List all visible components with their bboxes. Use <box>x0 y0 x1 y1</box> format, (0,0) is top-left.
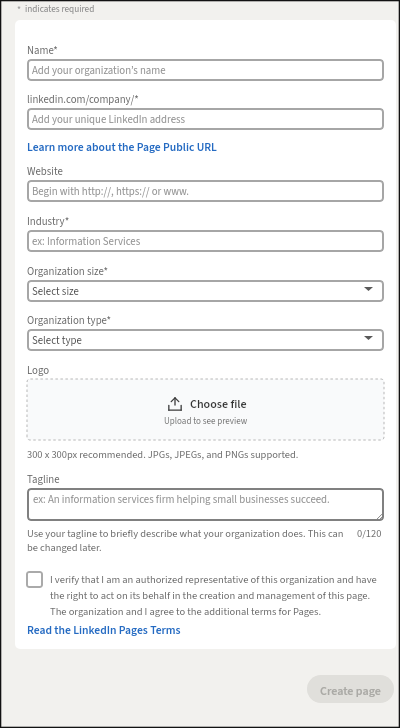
staticText: Add your organization’s name <box>32 63 166 78</box>
button[interactable]: Choose logo file <box>27 379 384 440</box>
button[interactable]: ex: An information services firm helping… <box>27 488 384 521</box>
staticText: Create page <box>320 683 381 700</box>
staticText: Upload to see preview <box>164 415 248 428</box>
staticText: Select type <box>32 333 82 348</box>
button[interactable]: Select type <box>27 329 384 351</box>
button[interactable]: Learn more about the Page Public URL <box>27 139 217 156</box>
staticText: Industry* <box>27 214 70 229</box>
staticText: Select size <box>32 284 79 299</box>
staticText: I verify that I am an authorized represe… <box>50 572 377 619</box>
staticText: ex: An information services firm helping… <box>33 492 330 507</box>
staticText: Begin with http://, https:// or www. <box>32 184 190 199</box>
staticText: Organization type* <box>27 313 112 328</box>
staticText: Read the LinkedIn Pages Terms <box>27 622 181 639</box>
staticText: Learn more about the Page Public URL <box>27 139 217 156</box>
staticText: Choose file <box>190 396 247 413</box>
staticText: Website <box>27 164 63 179</box>
staticText: ex: Information Services <box>32 234 141 249</box>
staticText: Use your tagline to briefly describe wha… <box>27 526 344 555</box>
staticText: linkedin.com/company/* <box>27 92 139 107</box>
staticText: Organization size* <box>27 264 109 279</box>
staticText: Logo <box>27 363 50 378</box>
button[interactable]: Begin with http://, https:// or www. <box>27 180 384 202</box>
staticText: Name* <box>27 43 58 58</box>
button[interactable]: Add your organization’s name <box>27 59 384 81</box>
staticText: * <box>17 3 21 17</box>
staticText: indicates required <box>25 3 95 16</box>
staticText: Add your unique LinkedIn address <box>32 112 186 127</box>
button[interactable]: Add your unique LinkedIn address <box>27 108 384 130</box>
staticText: Tagline <box>27 472 60 487</box>
staticText: 0/120 <box>357 526 382 541</box>
button[interactable]: Select size <box>27 280 384 302</box>
button[interactable]: Read the LinkedIn Pages Terms <box>27 622 181 639</box>
staticText: 300 x 300px recommended. JPGs, JPEGs, an… <box>27 447 299 462</box>
button[interactable]: Create page <box>307 675 394 703</box>
button[interactable]: ex: Information Services <box>27 230 384 252</box>
button[interactable]: I verify that I am an authorized represe… <box>26 571 43 588</box>
